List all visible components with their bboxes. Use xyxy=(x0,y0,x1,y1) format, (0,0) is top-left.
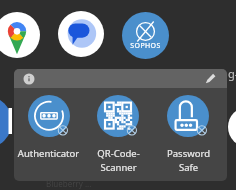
staticText: Password Safe xyxy=(157,147,220,174)
button[interactable]: Rename folder xyxy=(204,72,217,85)
button[interactable]: Password Safe xyxy=(153,95,223,174)
staticText: Blueberry ... xyxy=(46,178,92,189)
button[interactable]: Folder info xyxy=(23,73,35,85)
staticText: Authenticator xyxy=(17,147,80,160)
button[interactable]: QR-Code-Scanner xyxy=(83,95,153,174)
staticText: QR-Code-Scanner xyxy=(87,147,150,174)
staticText: SOPHOS xyxy=(122,41,169,51)
staticText: g- xyxy=(228,66,236,81)
button[interactable]: Authenticator xyxy=(14,95,83,160)
